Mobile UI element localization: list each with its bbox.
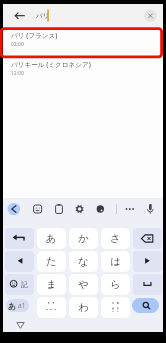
button[interactable]: さ [101, 228, 130, 249]
button[interactable] [133, 228, 162, 249]
button[interactable] [8, 8, 24, 24]
button[interactable]: パリキール (ミクロネシア) [3, 58, 163, 86]
button[interactable] [143, 202, 156, 215]
button[interactable] [73, 202, 86, 215]
staticText: パリ [36, 12, 50, 20]
button[interactable] [133, 251, 162, 272]
button[interactable] [7, 202, 20, 215]
staticText: な [78, 255, 89, 268]
button[interactable] [12, 319, 28, 331]
staticText: 記 [21, 280, 28, 289]
button[interactable]: ら [101, 274, 130, 295]
button[interactable] [94, 202, 107, 215]
button[interactable] [144, 9, 157, 22]
button[interactable]: 記 [5, 274, 34, 295]
button[interactable]: か [69, 228, 98, 249]
staticText: や [78, 278, 89, 291]
button[interactable]: パリ (フランス) [3, 28, 163, 58]
staticText: あ [8, 301, 17, 311]
button[interactable] [123, 202, 136, 215]
button[interactable]: わ [69, 297, 98, 318]
button[interactable] [37, 297, 66, 318]
button[interactable]: ま [37, 274, 66, 295]
staticText: ら [110, 278, 121, 291]
staticText: あ [46, 232, 57, 245]
button[interactable] [5, 228, 34, 249]
button[interactable]: あ [37, 228, 66, 249]
button[interactable] [133, 274, 162, 295]
button[interactable]: や [69, 274, 98, 295]
button[interactable]: は [101, 251, 130, 272]
staticText: た [46, 255, 57, 268]
staticText: パリ (フランス) [11, 31, 58, 40]
staticText: わ [78, 301, 89, 314]
staticText: は [110, 255, 121, 268]
button[interactable]: た [37, 251, 66, 272]
button[interactable]: あ [6, 299, 29, 312]
staticText: さ [110, 232, 121, 245]
button[interactable] [132, 298, 159, 313]
button[interactable] [5, 251, 34, 272]
staticText: か [78, 232, 89, 245]
staticText: 02:00 [11, 41, 24, 48]
staticText: ま [46, 278, 57, 291]
staticText: 12:00 [11, 70, 24, 77]
staticText: a1 [18, 301, 26, 310]
button[interactable]: な [69, 251, 98, 272]
button[interactable] [52, 202, 65, 215]
button[interactable] [3, 4, 163, 28]
button[interactable] [101, 297, 130, 318]
staticText: パリキール (ミクロネシア) [11, 60, 91, 69]
button[interactable] [31, 202, 44, 215]
